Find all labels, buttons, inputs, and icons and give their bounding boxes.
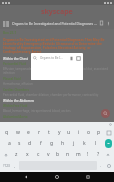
staticText: . — [100, 163, 102, 168]
button[interactable]: c — [33, 149, 43, 160]
staticText: q — [5, 129, 9, 136]
button[interactable]: t — [44, 127, 54, 138]
button[interactable]: Period — [98, 161, 104, 170]
button[interactable]: h — [57, 138, 68, 149]
button[interactable]: Delete — [104, 127, 113, 138]
button[interactable]: s — [14, 138, 24, 149]
staticText: Effusion, tamponade, serous or sanguineo… — [3, 67, 111, 75]
staticText: Within the Chest — [3, 57, 28, 61]
staticText: k — [83, 140, 86, 147]
staticText: ?123 — [3, 164, 10, 168]
button[interactable]: Home — [52, 172, 62, 182]
button[interactable]: x — [22, 149, 33, 160]
staticText: Within Free Fluid — [3, 104, 28, 108]
staticText: g — [50, 140, 54, 147]
staticText: a — [8, 140, 11, 147]
button[interactable]: v — [43, 149, 53, 160]
button[interactable]: i — [74, 127, 84, 138]
button[interactable]: Enter — [105, 139, 112, 148]
staticText: l — [95, 140, 97, 147]
staticText: n — [66, 151, 70, 158]
button[interactable]: Shift — [103, 149, 113, 160]
staticText: t — [48, 129, 50, 136]
staticText: Pericardial Fluid — [3, 62, 27, 66]
staticText: Organs to Be Investigated and Potential … — [3, 38, 111, 54]
button[interactable]: e — [23, 127, 34, 138]
button[interactable]: More options — [106, 21, 111, 26]
button[interactable]: ? — [93, 149, 103, 160]
button[interactable]: n — [63, 149, 73, 160]
button[interactable]: w — [12, 127, 23, 138]
button[interactable]: ! — [83, 149, 93, 160]
button[interactable]: d — [24, 138, 35, 149]
staticText: h — [61, 140, 65, 147]
button[interactable]: Back — [21, 172, 31, 182]
button[interactable]: Keyboard settings — [109, 123, 112, 126]
staticText: u — [67, 129, 71, 136]
staticText: c — [37, 151, 40, 158]
staticText: w — [16, 129, 20, 136]
staticText: e — [27, 129, 30, 136]
staticText: Abdominal Aorta — [3, 115, 28, 119]
button[interactable]: z — [11, 149, 22, 160]
staticText: Organs to Be I... — [40, 56, 63, 60]
staticText: m — [76, 151, 81, 158]
staticText: ! — [87, 151, 89, 158]
staticText: b — [56, 151, 60, 158]
staticText: Hemothorax, effusion — [3, 82, 33, 86]
staticText: Box 23-1 — [3, 31, 17, 35]
button[interactable]: p — [94, 127, 104, 138]
button[interactable]: Next — [76, 56, 81, 61]
staticText: y — [58, 129, 61, 136]
button[interactable]: b — [53, 149, 63, 160]
button[interactable]: l — [90, 138, 101, 149]
button[interactable]: u — [64, 127, 74, 138]
button[interactable]: y — [54, 127, 64, 138]
button[interactable]: j — [68, 138, 79, 149]
button[interactable]: r — [34, 127, 44, 138]
button[interactable]: Shift — [1, 149, 11, 160]
button[interactable]: Book — [3, 21, 9, 27]
button[interactable]: f — [35, 138, 46, 149]
button[interactable]: Emoji — [104, 161, 113, 170]
staticText: s — [18, 140, 21, 147]
button[interactable]: Bookmark — [99, 21, 104, 26]
staticText: Pleural Fluid — [3, 77, 21, 81]
staticText: Cardiac Chambers — [3, 88, 30, 92]
staticText: f — [40, 140, 42, 147]
button[interactable]: a — [4, 138, 14, 149]
staticText: ? — [97, 151, 100, 158]
button[interactable]: Comma — [12, 161, 18, 170]
staticText: x — [26, 151, 29, 158]
staticText: j — [73, 140, 75, 147]
button[interactable]: Search — [101, 109, 110, 118]
staticText: p — [97, 129, 101, 136]
button[interactable]: Search — [31, 53, 83, 80]
staticText: skyscape — [41, 7, 73, 17]
button[interactable]: Search — [33, 56, 37, 60]
button[interactable]: g — [46, 138, 57, 149]
button[interactable]: k — [79, 138, 90, 149]
button[interactable]: Recents — [83, 172, 93, 182]
button[interactable]: m — [73, 149, 83, 160]
staticText: , — [14, 163, 16, 168]
button[interactable]: q — [1, 127, 12, 138]
staticText: o — [87, 129, 91, 136]
button[interactable]: o — [84, 127, 94, 138]
button[interactable]: Previous — [69, 56, 74, 61]
staticText: Blood, hemorrhage, intraperitoneal blood… — [3, 109, 71, 113]
button[interactable]: ?123 — [1, 161, 12, 170]
staticText: d — [28, 140, 32, 147]
staticText: v — [47, 151, 50, 158]
staticText: Organs to Be Investigated and Potential … — [12, 21, 97, 26]
staticText: r — [38, 129, 41, 136]
staticText: Pericardial fluid, chamber dilation, cha… — [3, 93, 99, 97]
staticText: Within the Abdomen — [3, 99, 34, 103]
button[interactable]: Book — [0, 18, 114, 29]
staticText: z — [15, 151, 18, 158]
staticText: i — [78, 129, 80, 136]
